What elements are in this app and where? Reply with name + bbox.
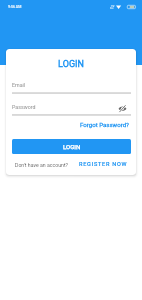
staticText: Email xyxy=(12,82,26,88)
staticText: Password xyxy=(12,104,36,110)
staticText: 9:56 AM xyxy=(8,5,22,9)
button[interactable]: REGISTER NOW xyxy=(69,161,128,168)
staticText: LOGIN xyxy=(6,59,136,70)
button[interactable]: Show password xyxy=(117,103,127,113)
staticText: Don't have an account? xyxy=(15,162,69,168)
staticText: LOGIN xyxy=(63,143,81,150)
button[interactable]: LOGIN xyxy=(12,139,131,154)
staticText: REGISTER NOW xyxy=(79,161,128,168)
button[interactable]: Forgot Password? xyxy=(78,119,131,130)
staticText: Forgot Password? xyxy=(80,121,129,128)
